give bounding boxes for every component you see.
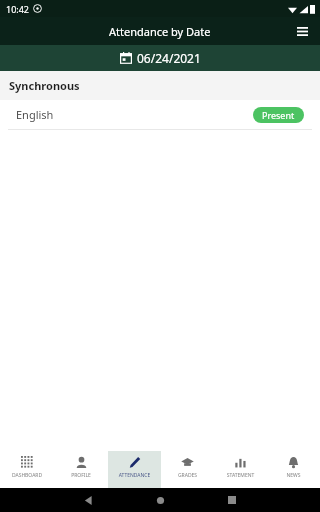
button[interactable]: Home <box>156 496 165 505</box>
button[interactable]: 06/24/2021 <box>0 45 320 71</box>
staticText: STATEMENT <box>214 472 267 479</box>
staticText: ATTENDANCE <box>108 472 161 479</box>
button[interactable]: Back <box>84 496 93 505</box>
button[interactable]: ATTENDANCE <box>108 451 161 488</box>
button[interactable]: NEWS <box>267 451 320 488</box>
staticText: Attendance by Date <box>109 24 211 39</box>
staticText: Present <box>262 109 295 121</box>
staticText: NEWS <box>267 472 320 479</box>
button[interactable]: PROFILE <box>54 451 108 488</box>
staticText: 06/24/2021 <box>137 50 201 66</box>
staticText: 10:42 <box>6 3 30 15</box>
staticText: PROFILE <box>54 472 108 479</box>
staticText: Synchronous <box>9 78 80 93</box>
staticText: English <box>16 107 54 122</box>
button[interactable]: STATEMENT <box>214 451 267 488</box>
staticText: DASHBOARD <box>0 472 54 479</box>
button[interactable]: English <box>0 100 320 129</box>
button[interactable]: DASHBOARD <box>0 451 54 488</box>
button[interactable]: Open menu <box>292 21 312 41</box>
staticText: GRADES <box>161 472 214 479</box>
button[interactable]: GRADES <box>161 451 214 488</box>
